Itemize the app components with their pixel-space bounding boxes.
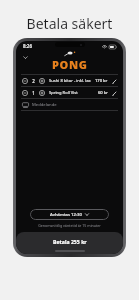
button[interactable]: Ändra <box>110 77 118 85</box>
staticText: Sushi 8 bitar - inkl. lax <box>49 78 93 84</box>
staticText: Betala 255 kr <box>53 238 87 245</box>
button[interactable]: Minska antal <box>16 87 123 98</box>
button[interactable]: Minska antal <box>21 89 29 97</box>
staticText: Betala säkert <box>0 14 139 33</box>
button[interactable]: Stäng <box>20 52 30 62</box>
button[interactable]: Meddelande <box>16 99 123 110</box>
button[interactable]: Minska antal <box>21 77 29 85</box>
button[interactable]: Öka antal <box>38 77 46 85</box>
staticText: 2 <box>32 78 35 84</box>
button[interactable]: Betala 255 kr <box>16 232 123 254</box>
staticText: 1 <box>32 90 35 96</box>
staticText: 170 kr <box>95 78 108 84</box>
staticText: Genomsnittlig väntetid är 15 minuter <box>16 223 123 228</box>
button[interactable]: Minska antal <box>16 75 123 86</box>
staticText: PONG <box>52 57 88 72</box>
staticText: 8:26 <box>23 43 32 49</box>
button[interactable]: Öka antal <box>38 89 46 97</box>
staticText: Meddelande <box>32 102 57 108</box>
staticText: 60 kr <box>98 90 108 96</box>
button[interactable]: Avhämtas 12:30 <box>30 209 109 220</box>
button[interactable]: Ändra <box>110 89 118 97</box>
staticText: Avhämtas 12:30 <box>50 212 82 218</box>
staticText: Spring Roll Vist <box>49 90 96 96</box>
